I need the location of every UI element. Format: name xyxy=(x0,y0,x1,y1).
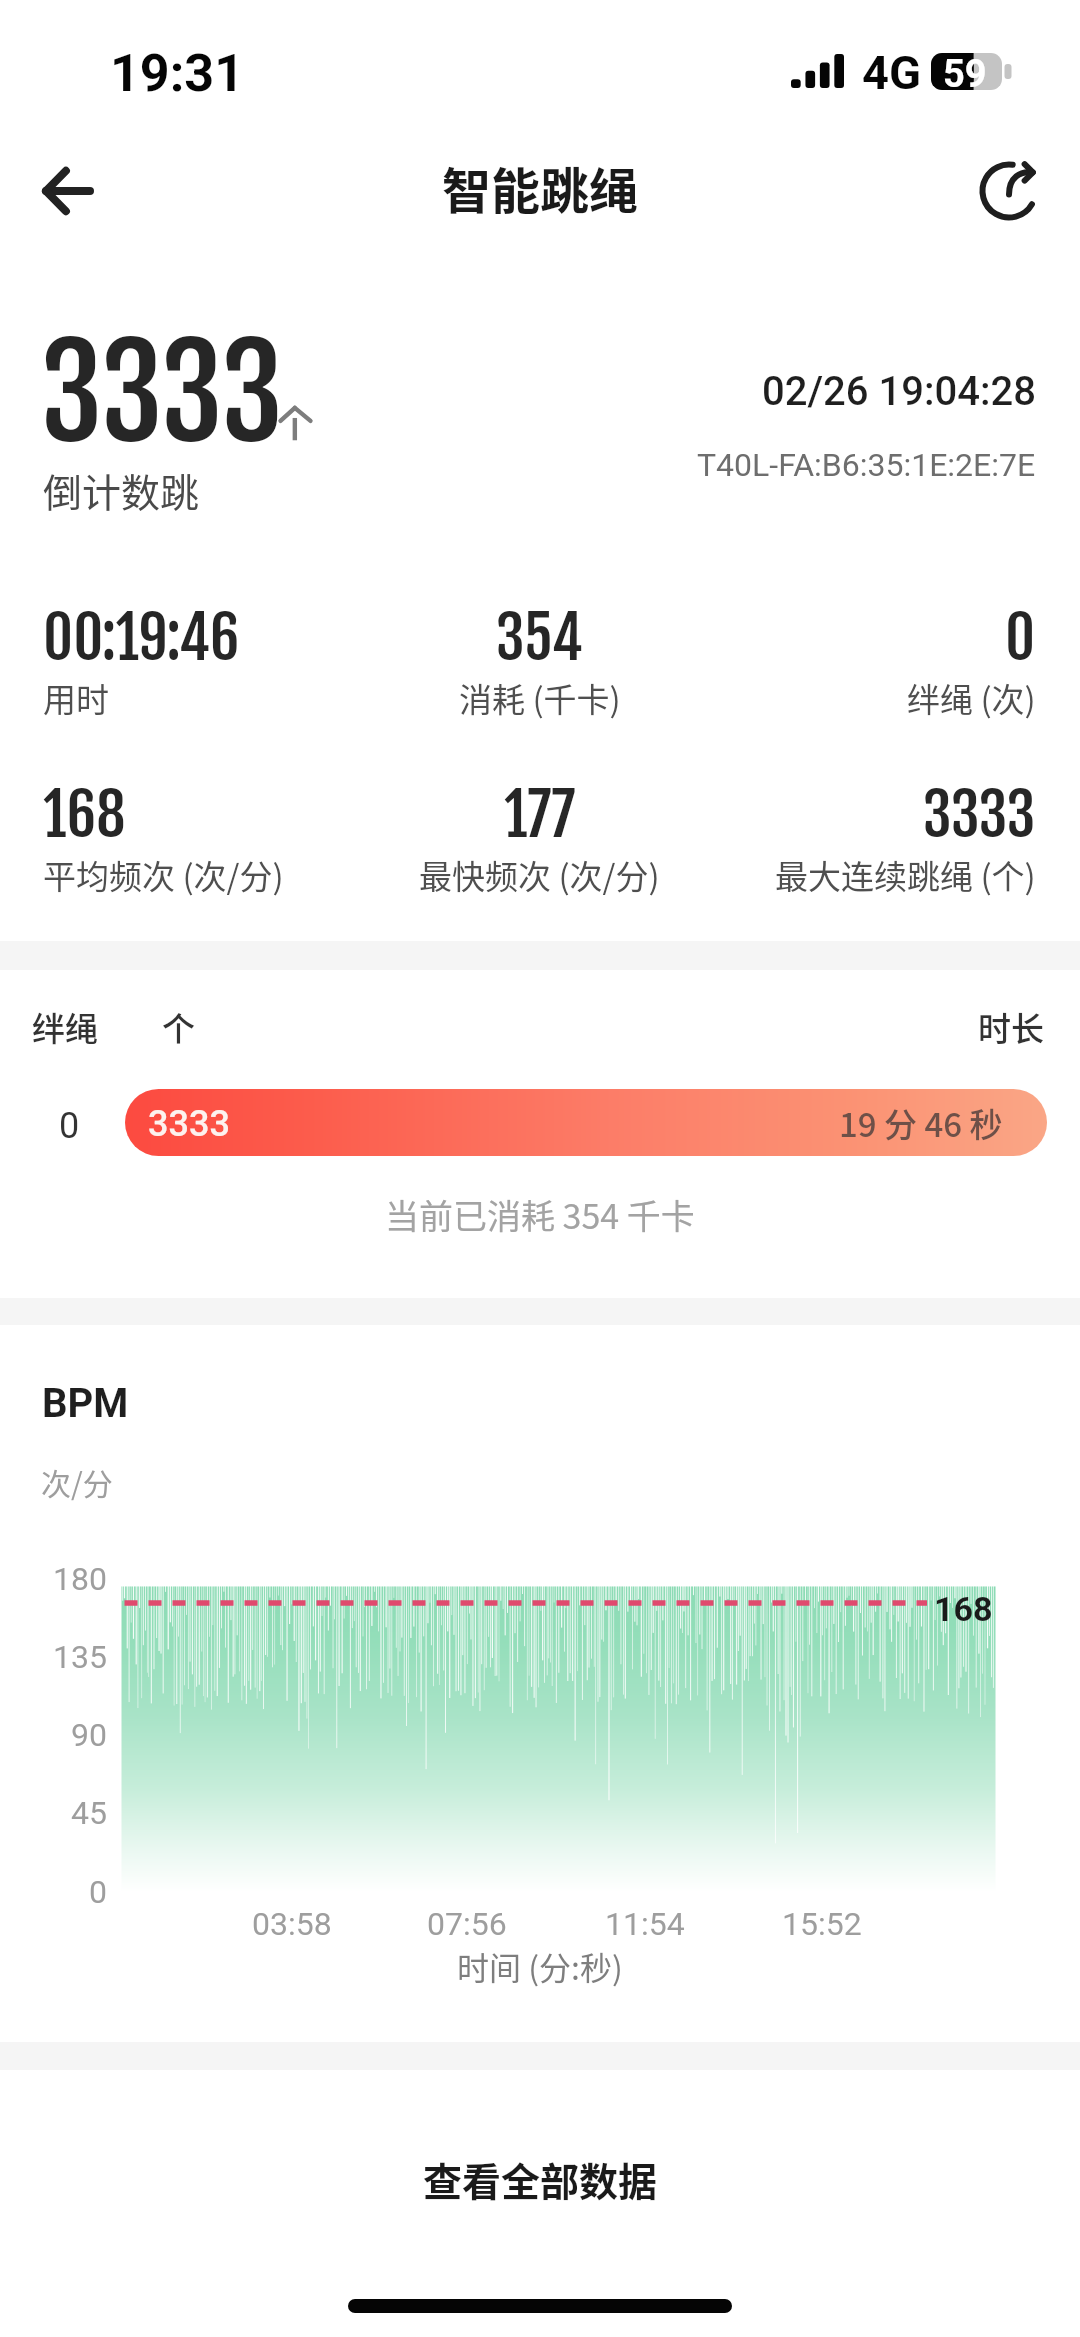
staticText: 11:54 xyxy=(605,1905,685,1943)
staticText: 19 分 46 秒 xyxy=(839,1099,1003,1147)
staticText: 个 xyxy=(162,1003,195,1051)
staticText: 当前已消耗 354 千卡 xyxy=(385,1190,695,1239)
staticText: 平均频次 (次/分) xyxy=(43,851,284,899)
staticText: 次/分 xyxy=(41,1460,113,1503)
staticText: BPM xyxy=(42,1380,129,1427)
staticText: 智能跳绳 xyxy=(442,152,639,223)
staticText: 0 xyxy=(59,1105,80,1147)
button[interactable]: Share xyxy=(966,145,1058,237)
staticText: 4G xyxy=(862,45,922,100)
staticText: 177 xyxy=(504,778,576,851)
staticText: 绊绳 (次) xyxy=(907,674,1036,722)
staticText: 绊绳 xyxy=(32,1003,98,1051)
staticText: 消耗 (千卡) xyxy=(459,674,621,722)
staticText: 最大连续跳绳 (个) xyxy=(775,851,1036,899)
staticText: 0 xyxy=(1005,601,1036,674)
staticText: 15:52 xyxy=(782,1905,862,1943)
staticText: 03:58 xyxy=(252,1905,332,1943)
button[interactable]: Back xyxy=(22,145,114,237)
staticText: 最快频次 (次/分) xyxy=(419,851,660,899)
staticText: 45 xyxy=(71,1794,107,1832)
staticText: 3333 xyxy=(41,315,283,472)
button[interactable]: 查看全部数据 xyxy=(0,2129,1080,2229)
staticText: 180 xyxy=(53,1560,107,1598)
staticText: 59 xyxy=(943,52,987,89)
staticText: 查看全部数据 xyxy=(423,2151,658,2207)
staticText: 90 xyxy=(71,1716,107,1754)
staticText: 倒计数跳 xyxy=(43,462,200,518)
staticText: 135 xyxy=(53,1638,107,1676)
staticText: 354 xyxy=(496,601,583,674)
staticText: 3333 xyxy=(148,1103,230,1145)
staticText: 168 xyxy=(934,1589,993,1629)
staticText: 19:31 xyxy=(110,43,244,104)
staticText: 07:56 xyxy=(427,1905,507,1943)
staticText: 时间 (分:秒) xyxy=(457,1943,623,1989)
staticText: 0 xyxy=(89,1873,107,1911)
staticText: 168 xyxy=(43,778,126,851)
staticText: 00:19:46 xyxy=(43,601,240,674)
staticText: 时长 xyxy=(978,1003,1044,1051)
staticText: 用时 xyxy=(43,674,109,722)
staticText: 3333 xyxy=(923,778,1036,851)
staticText: T40L-FA:B6:35:1E:2E:7E xyxy=(697,446,1036,484)
staticText: 02/26 19:04:28 xyxy=(762,368,1036,415)
